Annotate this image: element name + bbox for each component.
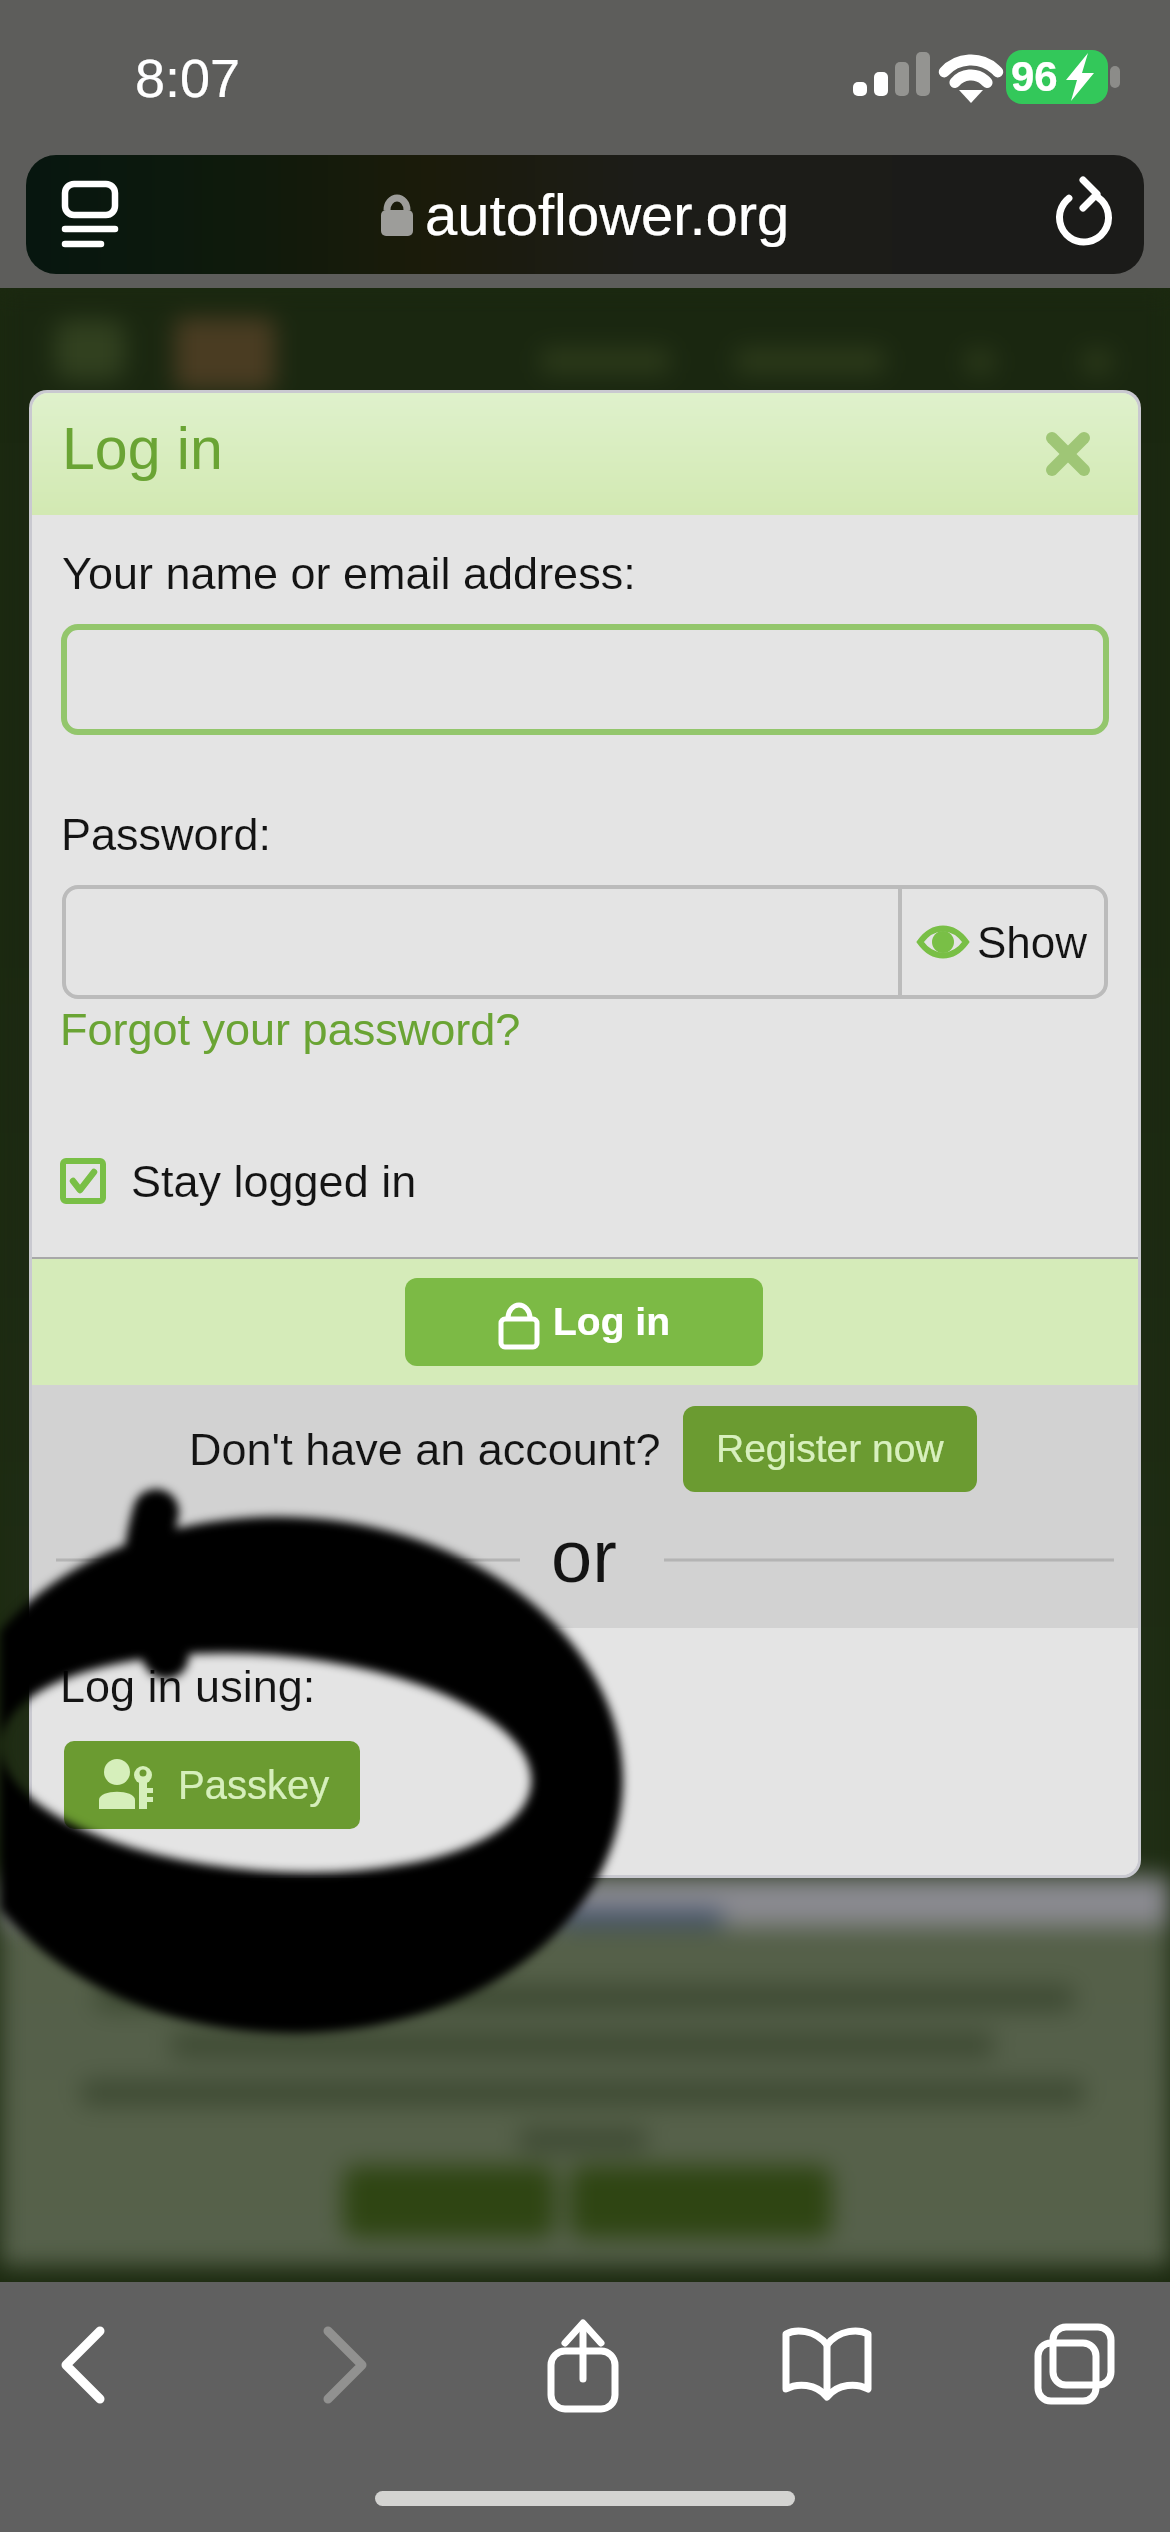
staticText: autoflower.org <box>425 182 790 247</box>
staticText: Don't have an account? <box>189 1424 661 1474</box>
button[interactable]: Reload <box>1024 155 1144 274</box>
button[interactable]: Back <box>20 2300 150 2430</box>
staticText: Password: <box>61 809 272 859</box>
button[interactable]: Share <box>518 2300 648 2430</box>
staticText: Your name or email address: <box>62 548 636 598</box>
button[interactable]: Close <box>998 393 1138 515</box>
button[interactable]: Forward <box>278 2300 408 2430</box>
button[interactable]: Tabs <box>1010 2300 1140 2430</box>
staticText: Log in using: <box>60 1661 316 1711</box>
staticText: Passkey <box>178 1763 330 1808</box>
button[interactable]: Log in <box>405 1278 763 1366</box>
button[interactable]: Show <box>900 887 1106 997</box>
button[interactable] <box>64 887 900 997</box>
staticText: Log in <box>553 1300 670 1344</box>
button[interactable]: Forgot your password? <box>60 1004 521 1054</box>
staticText: or <box>551 1515 617 1598</box>
button[interactable]: Register now <box>683 1406 977 1492</box>
button[interactable]: Stay logged in <box>32 1138 1138 1224</box>
staticText: Register now <box>716 1427 944 1471</box>
staticText: 96 <box>1011 53 1058 100</box>
button[interactable]: Page settings <box>32 155 148 274</box>
button[interactable]: Bookmarks <box>762 2300 892 2430</box>
staticText: Log in <box>62 416 223 482</box>
button[interactable]: Passkey <box>64 1741 360 1829</box>
staticText: Show <box>977 918 1088 967</box>
button[interactable] <box>64 627 1106 732</box>
staticText: Stay logged in <box>131 1156 417 1206</box>
staticText: 8:07 <box>135 48 241 108</box>
